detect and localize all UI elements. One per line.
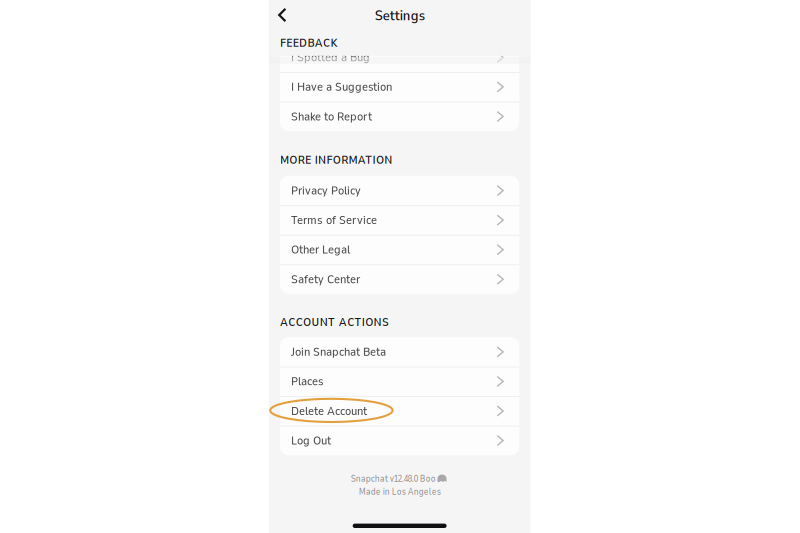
staticText: Join Snapchat Beta bbox=[291, 344, 386, 360]
button[interactable]: Delete Account bbox=[280, 396, 519, 426]
button[interactable]: Terms of Service bbox=[280, 205, 519, 235]
staticText: Shake to Report bbox=[291, 108, 372, 125]
staticText: Terms of Service bbox=[291, 212, 377, 228]
staticText: Settings bbox=[375, 5, 425, 25]
staticText: Log Out bbox=[291, 432, 331, 449]
staticText: Made in Los Angeles bbox=[359, 486, 441, 498]
button[interactable]: Safety Center bbox=[280, 264, 519, 294]
button[interactable]: I Spotted a Bug bbox=[280, 43, 519, 72]
staticText: I Have a Suggestion bbox=[291, 79, 392, 95]
button[interactable]: Log Out bbox=[280, 426, 519, 455]
staticText: Snapchat v12.48.0 Boo bbox=[351, 473, 436, 485]
button[interactable]: Places bbox=[280, 367, 519, 396]
button[interactable]: Shake to Report bbox=[280, 102, 519, 131]
button[interactable]: Other Legal bbox=[280, 235, 519, 264]
staticText: Other Legal bbox=[291, 241, 350, 258]
staticText: MORE INFORMATION bbox=[280, 152, 392, 168]
button[interactable]: Privacy Policy bbox=[280, 176, 519, 205]
button[interactable]: Join Snapchat Beta bbox=[280, 337, 519, 367]
staticText: I Spotted a Bug bbox=[291, 49, 370, 66]
staticText: Safety Center bbox=[291, 271, 360, 287]
staticText: Places bbox=[291, 373, 324, 390]
button[interactable]: Back bbox=[269, 0, 295, 30]
staticText: FEEDBACK bbox=[280, 35, 337, 51]
staticText: Delete Account bbox=[291, 403, 367, 419]
staticText: ACCOUNT ACTIONS bbox=[280, 314, 389, 330]
staticText: Privacy Policy bbox=[291, 182, 361, 199]
button[interactable]: I Have a Suggestion bbox=[280, 72, 519, 102]
